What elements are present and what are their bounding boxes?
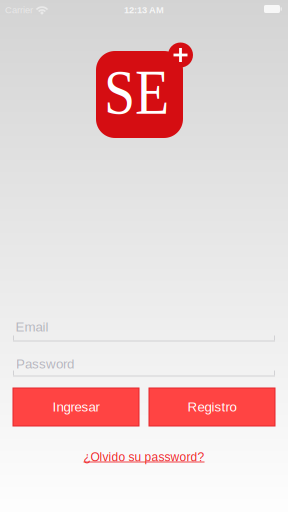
staticText: Password <box>16 357 74 371</box>
staticText: Registro <box>187 400 236 414</box>
staticText: Email <box>15 320 48 334</box>
staticText: ¿Olvido su password? <box>83 450 204 464</box>
button[interactable]: Registro <box>149 388 275 426</box>
staticText: Carrier <box>5 5 33 15</box>
staticText: Ingresar <box>52 400 99 414</box>
button[interactable]: Ingresar <box>13 388 139 426</box>
button[interactable]: ¿Olvido su password? <box>75 445 212 469</box>
staticText: SE <box>104 61 169 123</box>
staticText: 12:13 AM <box>124 5 164 15</box>
